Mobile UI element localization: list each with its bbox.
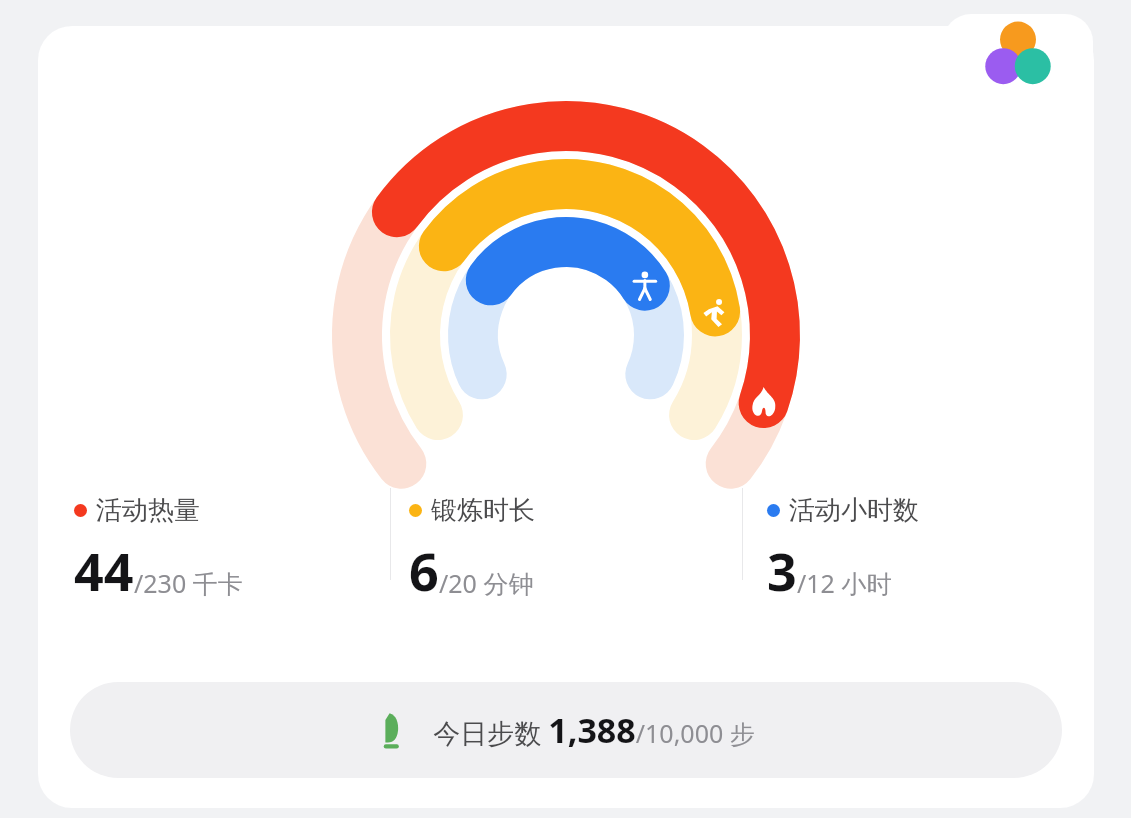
button[interactable]: 活动热量: [38, 488, 390, 610]
staticText: 44: [74, 535, 134, 606]
button[interactable]: App logo: [943, 14, 1093, 96]
button[interactable]: 活动小时数: [743, 488, 1094, 610]
staticText: 活动小时数: [789, 494, 919, 527]
staticText: /230 千卡: [134, 566, 243, 600]
staticText: /12 小时: [797, 566, 892, 600]
staticText: 今日步数 1,388/10,000 步: [433, 707, 755, 753]
other: Activity rings: [38, 26, 1094, 488]
staticText: 3: [767, 535, 797, 606]
button[interactable]: 锻炼时长: [391, 488, 742, 610]
staticText: 6: [409, 535, 439, 606]
staticText: 锻炼时长: [431, 494, 535, 527]
staticText: 活动热量: [96, 494, 200, 527]
staticText: /20 分钟: [439, 566, 534, 600]
button[interactable]: 今日步数 1,388/10,000 步: [70, 682, 1062, 778]
button[interactable]: Activity rings: [38, 26, 1094, 808]
